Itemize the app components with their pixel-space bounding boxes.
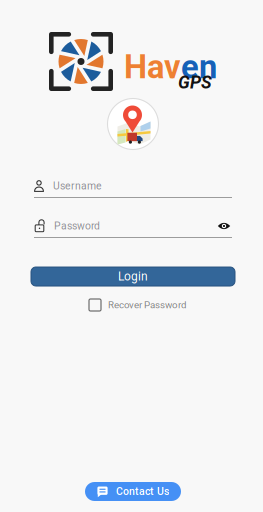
staticText: Hav bbox=[124, 48, 181, 86]
staticText: en bbox=[181, 48, 217, 86]
button[interactable]: Contact Us bbox=[85, 482, 181, 501]
staticText: GPS bbox=[178, 72, 212, 93]
staticText: Recover Password bbox=[108, 299, 186, 311]
button[interactable]: Recover Password bbox=[84, 298, 181, 312]
button[interactable]: Show password bbox=[216, 219, 232, 233]
staticText: Login bbox=[118, 269, 148, 284]
staticText: Username bbox=[53, 180, 102, 192]
button[interactable]: Login bbox=[31, 267, 235, 286]
staticText: Password bbox=[54, 220, 100, 232]
staticText: Contact Us bbox=[116, 485, 169, 498]
